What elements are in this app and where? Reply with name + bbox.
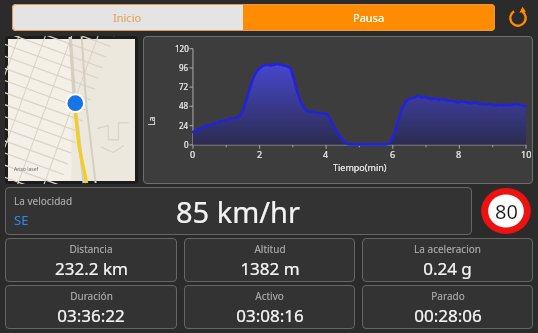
staticText: 72 [179, 81, 189, 92]
staticText: 10 [521, 148, 532, 160]
button[interactable]: Refrescar [504, 4, 532, 31]
staticText: 03:36:22 [57, 304, 125, 327]
staticText: 8 [456, 148, 462, 160]
staticText: Distancia [69, 242, 113, 256]
staticText: Tiempo(min) [333, 161, 387, 173]
button[interactable]: Altitud [184, 238, 355, 282]
staticText: 85 km/hr [176, 192, 301, 231]
staticText: 96 [179, 62, 189, 73]
staticText: 120 [175, 43, 189, 54]
button[interactable]: Inicio [12, 4, 243, 31]
button[interactable]: La aceleracion [362, 238, 533, 282]
button[interactable]: Parado [362, 285, 533, 329]
staticText: 0 [190, 148, 196, 160]
button[interactable]: Mapa [8, 39, 135, 181]
staticText: 00:28:06 [414, 304, 482, 327]
staticText: Parado [431, 289, 465, 303]
staticText: La velocidad [14, 194, 73, 208]
staticText: 0 [184, 139, 189, 150]
staticText: 0.24 g [423, 257, 472, 280]
staticText: 24 [179, 120, 189, 131]
button[interactable]: Pausa [243, 4, 495, 31]
button[interactable]: La velocidad [5, 187, 472, 235]
staticText: 2 [257, 148, 263, 160]
staticText: Altitud [254, 242, 286, 256]
staticText: 6 [390, 148, 396, 160]
button[interactable]: Distancia [5, 238, 177, 282]
button[interactable]: Duración [5, 285, 177, 329]
staticText: 48 [179, 100, 189, 111]
button[interactable]: Límite de velocidad 80 [479, 187, 533, 235]
staticText: Pausa [353, 10, 385, 25]
staticText: 80 [495, 198, 518, 225]
staticText: 03:08:16 [236, 304, 304, 327]
button[interactable]: Gráfico de velocidad [143, 36, 533, 184]
staticText: Duración [70, 289, 113, 303]
staticText: 4 [323, 148, 329, 160]
staticText: La aceleracion [414, 242, 481, 256]
button[interactable]: Activo [184, 285, 355, 329]
staticText: La velocidad(km/hr) [145, 75, 156, 125]
staticText: Activo [255, 289, 284, 303]
staticText: Inicio [113, 10, 142, 25]
staticText: Ariso lasef [14, 166, 39, 173]
staticText: 232.2 km [55, 257, 128, 280]
staticText: 1382 m [240, 257, 300, 280]
staticText: SE [14, 211, 29, 229]
